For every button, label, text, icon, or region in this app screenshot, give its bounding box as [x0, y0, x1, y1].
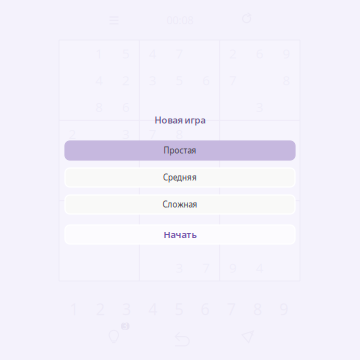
staticText: 3: [123, 321, 128, 331]
staticText: Сложная: [162, 199, 197, 210]
staticText: 2: [68, 125, 76, 143]
staticText: 8: [175, 125, 183, 143]
staticText: 3: [122, 125, 130, 143]
button[interactable]: Сложная: [65, 195, 295, 214]
staticText: 7: [149, 125, 157, 143]
button[interactable]: Начать: [65, 225, 295, 244]
staticText: Начать: [163, 228, 196, 241]
button[interactable]: Средняя: [65, 168, 295, 187]
staticText: Простая: [163, 145, 196, 156]
button[interactable]: Hint: [105, 320, 133, 346]
button[interactable]: Простая: [65, 141, 295, 160]
staticText: Новая игра: [154, 114, 205, 126]
staticText: Средняя: [163, 172, 197, 183]
